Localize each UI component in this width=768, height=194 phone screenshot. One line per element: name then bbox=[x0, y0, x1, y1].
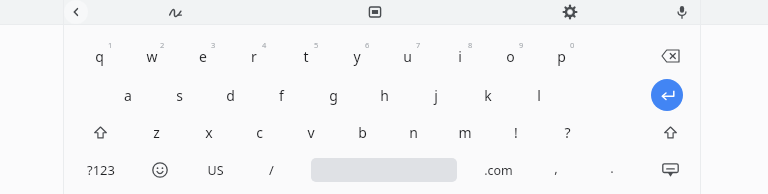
button[interactable]: Back bbox=[64, 0, 88, 24]
staticText: t bbox=[303, 47, 309, 66]
staticText: 9 bbox=[519, 40, 524, 50]
staticText: l bbox=[537, 86, 541, 105]
staticText: r bbox=[251, 47, 257, 66]
staticText: 2 bbox=[160, 40, 165, 50]
button[interactable]: Settings bbox=[558, 0, 582, 24]
staticText: p bbox=[557, 47, 566, 66]
staticText: i bbox=[458, 47, 462, 66]
button[interactable]: q bbox=[74, 38, 125, 74]
button[interactable]: Voice input bbox=[670, 0, 694, 24]
button[interactable]: US bbox=[189, 153, 241, 187]
button[interactable]: g bbox=[308, 77, 359, 113]
staticText: v bbox=[307, 123, 315, 142]
button[interactable]: d bbox=[205, 77, 256, 113]
button[interactable]: z bbox=[131, 114, 182, 150]
staticText: 5 bbox=[314, 40, 319, 50]
button[interactable]: p bbox=[536, 38, 587, 74]
staticText: 4 bbox=[262, 40, 267, 50]
staticText: e bbox=[199, 47, 207, 66]
button[interactable]: k bbox=[462, 77, 513, 113]
staticText: . bbox=[610, 159, 614, 177]
button[interactable]: / bbox=[245, 153, 297, 187]
staticText: a bbox=[124, 86, 132, 105]
staticText: w bbox=[146, 47, 158, 66]
button[interactable]: Clipboard bbox=[363, 0, 387, 24]
button[interactable]: s bbox=[154, 77, 205, 113]
staticText: g bbox=[329, 86, 338, 105]
button[interactable]: t bbox=[280, 38, 331, 74]
button[interactable]: Handwriting bbox=[163, 0, 187, 24]
staticText: s bbox=[176, 86, 183, 105]
staticText: , bbox=[554, 159, 558, 177]
button[interactable]: r bbox=[228, 38, 279, 74]
staticText: o bbox=[506, 47, 515, 66]
staticText: ? bbox=[564, 123, 571, 142]
button[interactable]: f bbox=[256, 77, 307, 113]
staticText: US bbox=[207, 162, 224, 179]
button[interactable]: o bbox=[485, 38, 536, 74]
staticText: .com bbox=[484, 162, 513, 179]
button[interactable]: Shift bbox=[75, 114, 125, 150]
staticText: u bbox=[403, 47, 412, 66]
staticText: x bbox=[205, 123, 213, 142]
button[interactable]: y bbox=[331, 38, 382, 74]
button[interactable]: .com bbox=[472, 153, 524, 187]
staticText: h bbox=[380, 86, 389, 105]
button[interactable]: i bbox=[434, 38, 485, 74]
staticText: b bbox=[358, 123, 367, 142]
staticText: 0 bbox=[570, 40, 575, 50]
staticText: 8 bbox=[468, 40, 473, 50]
button[interactable]: Hide keyboard bbox=[653, 153, 687, 187]
staticText: ! bbox=[514, 123, 518, 142]
button[interactable]: m bbox=[439, 114, 490, 150]
button[interactable]: x bbox=[183, 114, 234, 150]
button[interactable]: n bbox=[388, 114, 439, 150]
button[interactable]: ! bbox=[490, 114, 541, 150]
button[interactable]: h bbox=[359, 77, 410, 113]
staticText: / bbox=[269, 161, 274, 179]
button[interactable]: a bbox=[102, 77, 153, 113]
staticText: 3 bbox=[211, 40, 216, 50]
staticText: n bbox=[409, 123, 418, 142]
button[interactable]: u bbox=[382, 38, 433, 74]
staticText: c bbox=[256, 123, 263, 142]
button[interactable]: c bbox=[234, 114, 285, 150]
button[interactable]: Emoji bbox=[143, 153, 177, 187]
staticText: d bbox=[226, 86, 235, 105]
button[interactable]: j bbox=[410, 77, 461, 113]
button[interactable]: w bbox=[126, 38, 177, 74]
button[interactable]: l bbox=[513, 77, 564, 113]
button[interactable]: . bbox=[586, 151, 638, 185]
staticText: m bbox=[458, 123, 472, 142]
staticText: y bbox=[353, 47, 361, 66]
staticText: z bbox=[153, 123, 160, 142]
button[interactable]: , bbox=[530, 151, 582, 185]
button[interactable]: ? bbox=[542, 114, 593, 150]
staticText: j bbox=[434, 86, 438, 105]
button[interactable]: ?123 bbox=[75, 153, 127, 187]
staticText: 7 bbox=[416, 40, 421, 50]
button[interactable]: Enter bbox=[651, 79, 683, 111]
button[interactable]: Backspace bbox=[648, 39, 692, 73]
staticText: k bbox=[484, 86, 492, 105]
button[interactable]: v bbox=[285, 114, 336, 150]
staticText: q bbox=[95, 47, 104, 66]
staticText: f bbox=[279, 86, 284, 105]
button[interactable]: Shift right bbox=[645, 114, 695, 150]
staticText: 6 bbox=[365, 40, 370, 50]
staticText: ?123 bbox=[87, 161, 115, 179]
button[interactable]: e bbox=[177, 38, 228, 74]
staticText: 1 bbox=[108, 40, 113, 50]
button[interactable]: b bbox=[337, 114, 388, 150]
